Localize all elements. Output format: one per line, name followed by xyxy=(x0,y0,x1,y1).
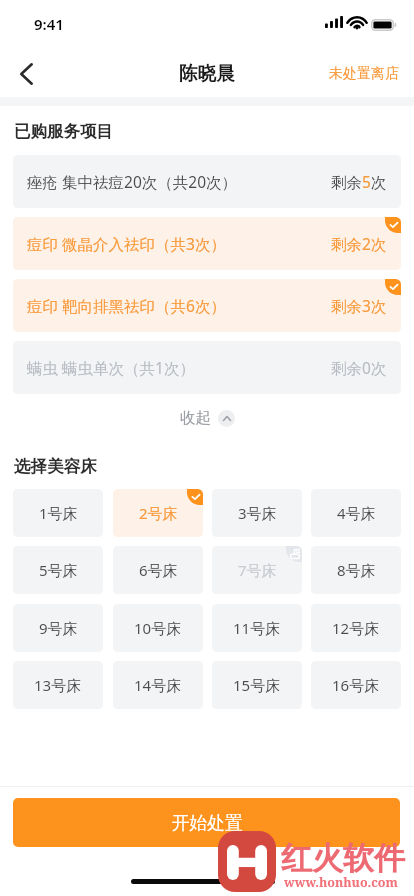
staticText: 10号床 xyxy=(134,618,182,638)
staticText: 开始处置 xyxy=(171,812,243,834)
staticText: 16号床 xyxy=(332,675,380,695)
staticText: 1号床 xyxy=(39,503,78,523)
button[interactable]: 4号床 xyxy=(311,489,401,537)
staticText: 剩余3次 xyxy=(331,295,387,316)
staticText: 9:41 xyxy=(34,14,64,34)
button[interactable]: 2号床 xyxy=(113,489,203,537)
button[interactable]: 12号床 xyxy=(311,604,401,652)
staticText: 8号床 xyxy=(337,560,376,580)
staticText: 剩余0次 xyxy=(331,357,387,378)
staticText: 5号床 xyxy=(39,560,78,580)
staticText: 已购服务项目 xyxy=(14,121,113,142)
staticText: 9号床 xyxy=(39,618,78,638)
staticText: 6号床 xyxy=(139,560,178,580)
staticText: 2号床 xyxy=(139,503,178,523)
staticText: www.honhuo.com xyxy=(284,874,398,891)
staticText: 4号床 xyxy=(337,503,376,523)
button[interactable]: 11号床 xyxy=(212,604,302,652)
staticText: 螨虫 螨虫单次（共1次） xyxy=(27,357,195,378)
button[interactable]: 6号床 xyxy=(113,546,203,594)
button[interactable]: 痤疮 集中祛痘20次（共20次） xyxy=(13,155,401,208)
button[interactable]: 7号床 xyxy=(212,546,302,594)
staticText: 红火软件 xyxy=(281,839,405,878)
staticText: 15号床 xyxy=(233,675,281,695)
staticText: 13号床 xyxy=(34,675,82,695)
staticText: 未处置离店 xyxy=(329,65,399,83)
staticText: 12号床 xyxy=(332,618,380,638)
staticText: 14号床 xyxy=(134,675,182,695)
staticText: 选择美容床 xyxy=(14,456,97,477)
button[interactable]: 痘印 微晶介入祛印（共3次） xyxy=(13,217,401,270)
button[interactable]: 13号床 xyxy=(13,661,103,709)
button[interactable]: 返回 xyxy=(2,50,50,98)
button[interactable]: 3号床 xyxy=(212,489,302,537)
staticText: 3号床 xyxy=(238,503,277,523)
staticText: 剩余2次 xyxy=(331,233,387,254)
staticText: 痤疮 集中祛痘20次（共20次） xyxy=(27,171,237,192)
button[interactable]: 10号床 xyxy=(113,604,203,652)
button[interactable]: 开始处置 xyxy=(13,798,400,847)
staticText: 11号床 xyxy=(233,618,281,638)
button[interactable]: 16号床 xyxy=(311,661,401,709)
staticText: 收起 xyxy=(180,408,211,428)
staticText: 痘印 靶向排黑祛印（共6次） xyxy=(27,295,226,316)
button[interactable]: 未处置离店 xyxy=(314,53,414,95)
button[interactable]: 痘印 靶向排黑祛印（共6次） xyxy=(13,279,401,332)
button[interactable]: 14号床 xyxy=(113,661,203,709)
button[interactable]: 8号床 xyxy=(311,546,401,594)
staticText: 痘印 微晶介入祛印（共3次） xyxy=(27,233,226,254)
button[interactable]: 15号床 xyxy=(212,661,302,709)
staticText: 陈晓晨 xyxy=(179,62,235,85)
staticText: 剩余5次 xyxy=(331,171,387,192)
button[interactable]: 5号床 xyxy=(13,546,103,594)
staticText: 7号床 xyxy=(238,560,277,580)
button[interactable]: 收起 xyxy=(164,404,251,432)
button[interactable]: 1号床 xyxy=(13,489,103,537)
button[interactable]: 螨虫 螨虫单次（共1次） xyxy=(13,341,401,394)
button[interactable]: 9号床 xyxy=(13,604,103,652)
